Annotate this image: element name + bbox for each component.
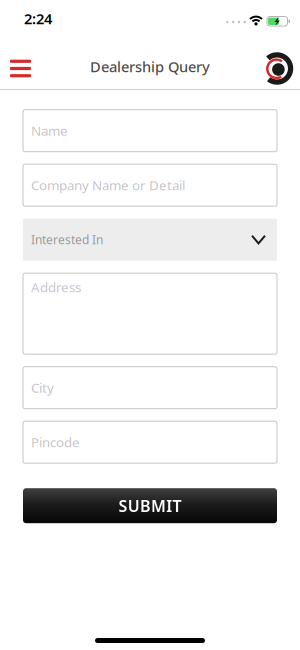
staticText: 2:24: [24, 9, 52, 28]
staticText: [31, 276, 34, 294]
staticText: [31, 122, 34, 139]
staticText: Name: [31, 122, 68, 139]
staticText: [31, 176, 34, 194]
staticText: Pincode: [31, 433, 80, 451]
staticText: SUBMIT: [118, 495, 181, 516]
button[interactable]: Interested In: [23, 219, 277, 261]
textField[interactable]: [31, 276, 277, 294]
button[interactable]: SUBMIT: [23, 488, 277, 523]
textField[interactable]: [31, 379, 277, 396]
staticText: City: [31, 379, 54, 396]
button[interactable]: Menu: [0, 44, 39, 89]
staticText: [31, 379, 34, 396]
textField[interactable]: [31, 122, 277, 139]
staticText: Address: [31, 278, 81, 296]
staticText: [31, 433, 34, 451]
staticText: Company Name or Detail: [31, 176, 185, 194]
staticText: Dealership Query: [90, 57, 210, 76]
textField[interactable]: [31, 433, 277, 451]
staticText: Interested In: [31, 232, 103, 248]
textField[interactable]: [31, 176, 277, 194]
